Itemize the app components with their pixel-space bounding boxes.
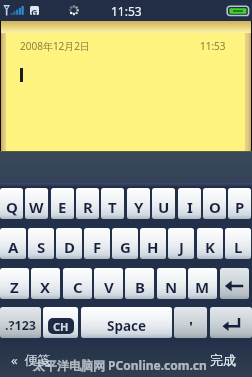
staticText: C (73, 277, 83, 297)
button[interactable]: F (84, 228, 110, 259)
staticText: U (158, 197, 170, 217)
button[interactable]: S (28, 228, 54, 259)
staticText: V (104, 277, 114, 297)
staticText: J (179, 237, 184, 257)
staticText: F (93, 237, 102, 257)
staticText: M (195, 277, 210, 297)
button[interactable]: V (94, 268, 123, 299)
staticText: Y (134, 197, 144, 217)
button[interactable]: A (0, 228, 26, 259)
staticText: B (135, 277, 145, 297)
staticText: L (234, 237, 243, 257)
button[interactable]: L (225, 228, 251, 259)
button[interactable]: X (31, 268, 60, 299)
button[interactable]: Y (127, 188, 150, 219)
button[interactable]: C (63, 268, 92, 299)
button[interactable]: H (140, 228, 166, 259)
button[interactable]: B (125, 268, 154, 299)
button[interactable]: J (168, 228, 194, 259)
staticText: 太平洋电脑网 PConline.com.cn (33, 357, 207, 373)
staticText: K (205, 237, 215, 257)
staticText: Q (6, 197, 18, 217)
staticText: G (31, 6, 38, 15)
staticText: O (209, 197, 221, 217)
button[interactable]: Z (0, 268, 29, 299)
button[interactable]: P (228, 188, 251, 219)
button[interactable]: 完成 (192, 342, 252, 377)
button[interactable]: U (152, 188, 175, 219)
staticText: CH (53, 319, 69, 334)
button[interactable]: Enter (210, 307, 252, 338)
staticText: P (235, 197, 245, 217)
button[interactable]: « 便笺 (0, 342, 252, 377)
button[interactable]: N (157, 268, 186, 299)
staticText: H (147, 237, 159, 257)
staticText: G (120, 237, 131, 257)
button[interactable]: G (112, 228, 138, 259)
staticText: 2008年12月2日 (20, 39, 91, 53)
button[interactable]: ' (174, 307, 207, 338)
staticText: Space (107, 317, 147, 335)
staticText: E (58, 197, 67, 217)
button[interactable]: W (25, 188, 48, 219)
button[interactable]: I (178, 188, 201, 219)
button[interactable]: Switch language (43, 307, 78, 338)
staticText: Z (10, 277, 19, 297)
staticText: A (8, 237, 19, 257)
staticText: S (37, 237, 46, 257)
staticText: « 便笺 (11, 351, 51, 369)
button[interactable]: .?123 (0, 307, 41, 338)
staticText: 完成 (210, 352, 236, 368)
staticText: R (83, 197, 93, 217)
staticText: .?123 (5, 317, 36, 334)
button[interactable]: Q (0, 188, 23, 219)
staticText: 11:53 (200, 39, 226, 53)
button[interactable]: Space (81, 307, 172, 338)
button[interactable]: R (76, 188, 99, 219)
button[interactable]: T (101, 188, 124, 219)
staticText: ' (189, 316, 193, 336)
button[interactable]: M (188, 268, 217, 299)
button[interactable]: Backspace (220, 268, 249, 299)
button[interactable]: E (51, 188, 74, 219)
staticText: N (165, 277, 178, 297)
staticText: I (187, 197, 193, 217)
button[interactable]: O (203, 188, 226, 219)
staticText: T (108, 197, 117, 217)
staticText: W (29, 197, 44, 217)
staticText: 11:53 (111, 3, 142, 19)
button[interactable]: D (56, 228, 82, 259)
staticText: D (64, 237, 75, 257)
button[interactable]: K (197, 228, 223, 259)
staticText: X (40, 277, 51, 297)
